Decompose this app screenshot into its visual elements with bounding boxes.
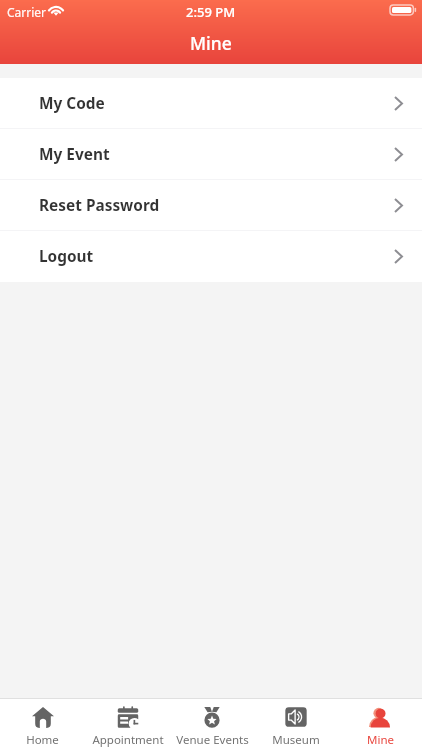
staticText: 2:59 PM: [186, 3, 236, 21]
staticText: Mine: [367, 732, 394, 748]
staticText: Carrier: [7, 4, 47, 20]
button[interactable]: Logout: [0, 231, 422, 282]
staticText: Venue Events: [176, 732, 249, 748]
button[interactable]: Appointment: [85, 699, 170, 750]
staticText: My Event: [39, 144, 110, 165]
staticText: My Code: [39, 93, 105, 114]
staticText: Home: [26, 732, 59, 748]
button[interactable]: Venue Events: [170, 699, 254, 750]
button[interactable]: My Code: [0, 78, 422, 129]
button[interactable]: My Event: [0, 129, 422, 180]
button[interactable]: Museum: [254, 699, 338, 750]
staticText: Reset Password: [39, 195, 160, 216]
button[interactable]: Mine: [338, 699, 422, 750]
staticText: Mine: [190, 31, 232, 55]
staticText: Museum: [272, 732, 320, 748]
staticText: Logout: [39, 246, 94, 267]
button[interactable]: Home: [0, 699, 85, 750]
staticText: Appointment: [92, 732, 164, 748]
button[interactable]: Reset Password: [0, 180, 422, 231]
